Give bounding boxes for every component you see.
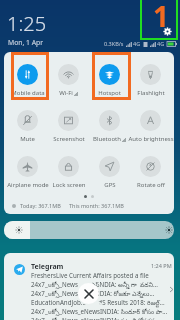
button[interactable]: Rotate off	[130, 144, 171, 190]
staticText: FreshersLive Current Affairs posted a fi…	[31, 271, 149, 279]
staticText: Wi-Fi	[59, 89, 73, 97]
button[interactable]: Lock screen	[48, 144, 89, 190]
staticText: GPS	[104, 181, 116, 189]
staticText: This month: 367.1MB	[69, 202, 124, 209]
staticText: Telegram	[31, 262, 64, 272]
staticText: Hotspot	[98, 89, 121, 97]
button[interactable]: Flashlight	[130, 52, 171, 98]
staticText: Screenshot	[53, 135, 85, 143]
staticText: Flashlight	[137, 89, 165, 97]
button[interactable]: Auto brightness	[130, 98, 171, 144]
staticText: Lock screen	[52, 181, 86, 189]
button[interactable]: Settings	[163, 27, 172, 36]
staticText: 4G	[157, 40, 165, 47]
button[interactable]: GPS	[89, 144, 130, 190]
button[interactable]: Screenshot	[48, 98, 89, 144]
staticText: 4G	[133, 40, 141, 47]
button[interactable]: Brightness	[4, 221, 174, 239]
staticText: 24x7_ಆక్సో_News_eNewsINDIA: సిందూర్ కోసం…	[31, 307, 168, 316]
staticText: 24x7_ಆక్సో_News స్NDIA: రోజకూ ఎన్నేలు...	[31, 289, 155, 298]
staticText: Today: 367.1MB	[20, 202, 61, 209]
staticText: 0.3KB/s	[104, 40, 124, 47]
staticText: Auto brightness	[128, 135, 174, 143]
staticText: EducationAndJob... ేS Results 2018: రిజల…	[31, 298, 165, 307]
staticText: 1:25	[7, 10, 47, 37]
staticText: Rotate off	[137, 181, 165, 189]
staticText: Airplane mode	[7, 181, 49, 189]
button[interactable]: Airplane mode	[7, 144, 48, 190]
staticText: 1	[153, 0, 170, 35]
button[interactable]: Hotspot	[89, 52, 130, 98]
staticText: Mon, 1 Apr	[8, 38, 44, 47]
staticText: Bluetooth	[93, 135, 121, 143]
button[interactable]: Mute	[7, 98, 48, 144]
staticText: 1:24 PM	[151, 262, 172, 269]
staticText: Mute	[20, 135, 35, 143]
staticText: 24x7_ಆక్సో_News_eNewsINDIA: పట్టాలి గోవర…	[31, 316, 161, 320]
button[interactable]: Mobile data	[7, 52, 48, 98]
staticText: Mobile data	[11, 89, 45, 97]
button[interactable]: Wi-Fi	[48, 52, 89, 98]
button[interactable]: Bluetooth	[89, 98, 130, 144]
button[interactable]: Telegram	[4, 253, 174, 320]
staticText: 24x7_ಆక్సో_News ఎస్NDIA: అన్నీ గా వదని..…	[31, 280, 159, 289]
